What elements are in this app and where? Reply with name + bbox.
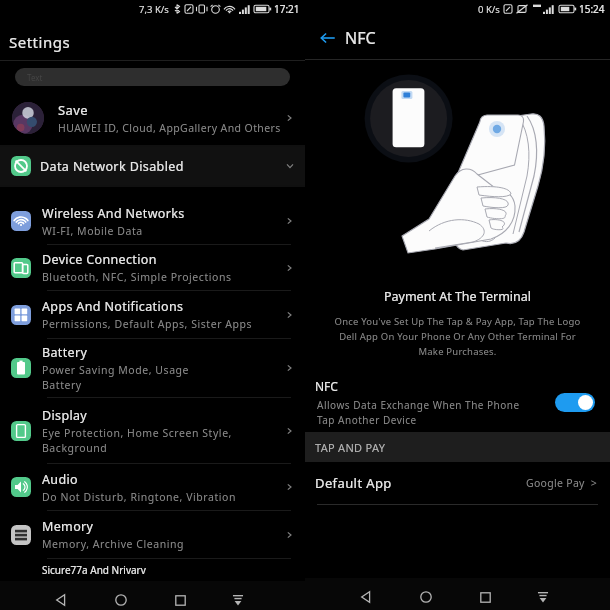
staticText: Wireless And Networks (42, 205, 185, 222)
staticText: Apps And Notifications (42, 298, 184, 315)
button[interactable]: Recents (167, 587, 193, 610)
button[interactable]: Hide navigation bar (225, 587, 251, 610)
button[interactable]: Battery (0, 339, 305, 397)
staticText: Battery (42, 344, 88, 361)
staticText: Device Connection (42, 251, 157, 268)
staticText: Permissions, Default Apps, Sister Apps (42, 317, 253, 331)
button[interactable]: Default App (305, 462, 610, 504)
button[interactable]: Memory (0, 511, 305, 558)
staticText: WI-FI, Mobile Data (42, 224, 143, 238)
button[interactable]: NFC (305, 376, 610, 428)
staticText: Sicure77a And Nrivarv (42, 563, 146, 577)
button[interactable]: Save (0, 99, 305, 137)
staticText: Memory, Archive Cleaning (42, 537, 184, 551)
staticText: Once You've Set Up The Tap & Pay App, Ta… (317, 315, 598, 358)
staticText: Data Network Disabled (40, 158, 284, 175)
staticText: 17:21 (274, 2, 300, 16)
staticText: Default App (315, 474, 392, 492)
staticText: Save (58, 101, 88, 119)
staticText: 15:24 (579, 2, 605, 16)
button[interactable]: Apps And Notifications (0, 291, 305, 338)
button[interactable]: Recents (472, 584, 498, 610)
staticText: TAP AND PAY (315, 440, 386, 455)
staticText: 7,3 K/s (139, 3, 169, 16)
staticText: Eye Protection, Home Screen Style, Backg… (42, 426, 232, 455)
staticText: Display (42, 407, 88, 424)
button[interactable]: Display (0, 398, 305, 463)
button[interactable]: Home (413, 584, 439, 610)
button[interactable]: Back (353, 584, 379, 610)
button[interactable]: Device Connection (0, 245, 305, 290)
button[interactable]: Search settings (15, 68, 290, 86)
staticText: Memory (42, 518, 94, 535)
staticText: Audio (42, 471, 78, 488)
button[interactable]: Audio (0, 464, 305, 510)
button[interactable]: Back (315, 25, 341, 51)
button[interactable]: Wireless And Networks (0, 198, 305, 244)
button[interactable]: Data Network Disabled (0, 147, 305, 185)
staticText: HUAWEI ID, Cloud, AppGallery And Others (58, 121, 281, 135)
staticText: NFC (345, 27, 376, 49)
button[interactable]: Home (108, 587, 134, 610)
button[interactable]: NFC toggle (555, 393, 595, 412)
button[interactable]: Hide navigation bar (530, 584, 556, 610)
staticText: Allows Data Exchange When The Phone Tap … (317, 398, 520, 427)
button[interactable]: Back (48, 587, 74, 610)
staticText: Bluetooth, NFC, Simple Projections (42, 270, 232, 284)
staticText: Google Pay > (526, 476, 598, 490)
staticText: 0 K/s (478, 3, 500, 16)
staticText: Settings (9, 32, 71, 52)
staticText: Payment At The Terminal (305, 288, 610, 305)
staticText: NFC (315, 378, 338, 394)
staticText: Text (27, 72, 43, 83)
staticText: Do Not Disturb, Ringtone, Vibration (42, 490, 236, 504)
staticText: Power Saving Mode, Usage Battery (42, 363, 190, 392)
